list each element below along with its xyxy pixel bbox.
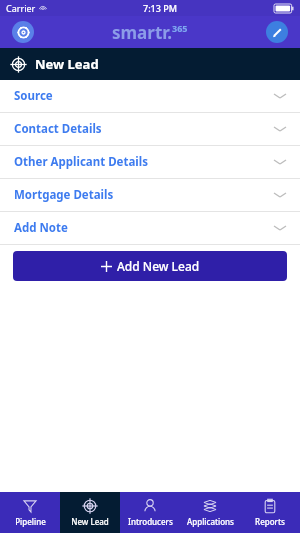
staticText: smartr. (112, 21, 172, 44)
button[interactable]: Reports (240, 492, 300, 533)
button[interactable]: Add Note (0, 212, 300, 244)
staticText: Add Note (14, 220, 68, 236)
staticText: 7:13 PM (143, 2, 177, 14)
staticText: Applications (187, 516, 234, 527)
staticText: Introducers (128, 516, 173, 527)
button[interactable]: Pipeline (0, 492, 60, 533)
staticText: Contact Details (14, 121, 102, 137)
staticText: Other Applicant Details (14, 154, 148, 170)
button[interactable]: Source (0, 80, 300, 112)
button[interactable]: Applications (180, 492, 240, 533)
button[interactable]: Contact Details (0, 113, 300, 145)
button[interactable]: Add New Lead (13, 251, 287, 281)
button[interactable]: Mortgage Details (0, 179, 300, 211)
staticText: New Lead (71, 516, 109, 527)
staticText: Pipeline (15, 516, 46, 527)
button[interactable]: Other Applicant Details (0, 146, 300, 178)
button[interactable]: Settings (12, 21, 34, 43)
staticText: Mortgage Details (14, 187, 114, 203)
button[interactable]: Introducers (120, 492, 180, 533)
staticText: Carrier (6, 2, 36, 14)
button[interactable]: New Lead (60, 492, 120, 533)
button[interactable]: Edit (266, 21, 288, 43)
staticText: Reports (255, 516, 285, 527)
staticText: Source (14, 88, 53, 104)
staticText: New Lead (35, 55, 99, 73)
staticText: 365 (172, 22, 188, 34)
staticText: Add New Lead (117, 258, 200, 274)
